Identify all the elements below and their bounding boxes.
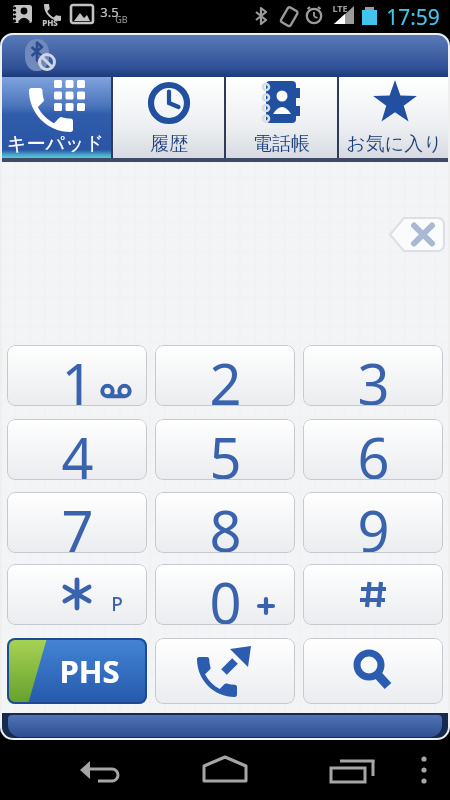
button[interactable]: キーパッド — [0, 77, 111, 158]
staticText: 7 — [61, 492, 94, 553]
button[interactable]: 7 — [7, 492, 147, 553]
button[interactable]: 5 — [155, 419, 295, 480]
button[interactable]: 0 — [155, 564, 295, 625]
staticText: P — [111, 591, 123, 617]
staticText: 2 — [209, 345, 242, 406]
button[interactable]: 9 — [303, 492, 443, 553]
button[interactable] — [72, 750, 122, 790]
button[interactable]: 1 — [7, 345, 147, 406]
staticText: お気に入り — [346, 132, 443, 156]
staticText: GB — [115, 13, 128, 25]
button[interactable]: 2 — [155, 345, 295, 406]
button[interactable]: 8 — [155, 492, 295, 553]
staticText: 3 — [357, 345, 390, 406]
staticText: LTE — [332, 2, 348, 14]
button[interactable] — [303, 564, 443, 625]
button[interactable] — [388, 216, 446, 253]
button[interactable] — [155, 638, 295, 704]
button[interactable]: 4 — [7, 419, 147, 480]
button[interactable]: お気に入り — [339, 77, 450, 158]
button[interactable]: P — [7, 564, 147, 625]
staticText: 9 — [357, 492, 390, 553]
staticText: 履歴 — [150, 132, 188, 156]
button[interactable]: 6 — [303, 419, 443, 480]
staticText: 3.5 — [100, 3, 119, 21]
button[interactable]: PHS — [7, 638, 147, 704]
staticText: 17:59 — [386, 3, 440, 32]
staticText: 8 — [209, 492, 242, 553]
staticText: 1 — [61, 345, 94, 406]
staticText: PHS — [59, 650, 120, 692]
staticText: キーパッド — [7, 132, 104, 156]
staticText: 0 — [209, 564, 242, 625]
button[interactable] — [303, 638, 443, 704]
button[interactable]: 履歴 — [113, 77, 224, 158]
staticText: PHS — [42, 17, 58, 28]
staticText: 5 — [209, 419, 242, 480]
staticText: 電話帳 — [253, 132, 310, 156]
button[interactable]: 3 — [303, 345, 443, 406]
button[interactable] — [323, 750, 373, 790]
staticText: 6 — [357, 419, 390, 480]
staticText: 4 — [61, 419, 94, 480]
button[interactable]: 電話帳 — [226, 77, 337, 158]
button[interactable] — [200, 750, 250, 790]
